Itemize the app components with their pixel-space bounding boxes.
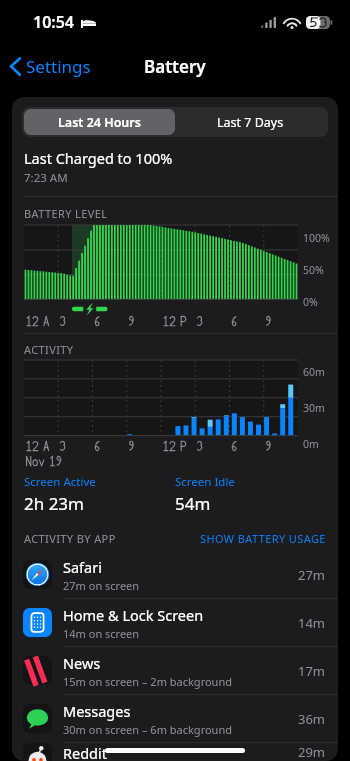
staticText: Safari: [63, 557, 102, 577]
staticText: 2h 23m: [24, 492, 84, 515]
staticText: ACTIVITY: [24, 342, 74, 357]
staticText: SHOW BATTERY USAGE: [200, 531, 326, 546]
staticText: 36m: [298, 710, 326, 728]
staticText: 27m: [298, 566, 326, 584]
staticText: 0%: [303, 295, 318, 309]
staticText: Last 24 Hours: [58, 114, 141, 131]
staticText: 30m: [303, 401, 325, 415]
staticText: 7:23 AM: [24, 170, 68, 186]
staticText: 0m: [303, 437, 319, 451]
staticText: 14m on screen: [63, 626, 140, 641]
staticText: Last Charged to 100%: [24, 148, 173, 168]
staticText: BATTERY LEVEL: [24, 206, 108, 221]
button[interactable]: Home & Lock Screen: [12, 599, 338, 646]
button[interactable]: SHOW BATTERY USAGE: [200, 531, 326, 546]
staticText: Screen Idle: [175, 474, 235, 490]
staticText: 30m on screen – 6m background: [63, 722, 232, 737]
button[interactable]: News: [12, 647, 338, 694]
staticText: 17m: [298, 662, 326, 680]
staticText: Screen Active: [24, 474, 96, 490]
button[interactable]: Last 7 Days: [175, 109, 326, 135]
staticText: 100%: [303, 231, 330, 245]
staticText: Settings: [26, 55, 91, 78]
staticText: 29m: [298, 743, 326, 761]
staticText: Last 7 Days: [217, 114, 284, 131]
button[interactable]: Reddit: [12, 743, 338, 761]
staticText: News: [63, 653, 101, 673]
button[interactable]: Settings: [6, 50, 95, 83]
staticText: ACTIVITY BY APP: [24, 531, 116, 546]
staticText: 10:54: [33, 11, 75, 33]
button[interactable]: Messages: [12, 695, 338, 742]
staticText: 14m: [298, 614, 326, 632]
staticText: 54m: [175, 492, 211, 515]
staticText: Battery: [144, 55, 206, 78]
staticText: 50%: [303, 263, 324, 277]
staticText: 27m on screen: [63, 578, 140, 593]
staticText: Home & Lock Screen: [63, 605, 204, 625]
staticText: Messages: [63, 701, 131, 721]
staticText: 60m: [303, 365, 325, 379]
staticText: 15m on screen – 2m background: [63, 674, 232, 689]
button[interactable]: Safari: [12, 551, 338, 598]
staticText: Reddit: [63, 743, 108, 761]
button[interactable]: Last 24 Hours: [24, 109, 175, 135]
